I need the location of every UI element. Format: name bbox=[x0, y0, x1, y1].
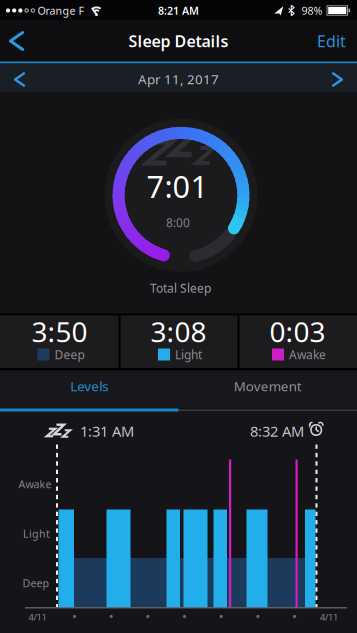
staticText: Awake bbox=[18, 477, 51, 491]
button[interactable] bbox=[322, 65, 352, 94]
button[interactable]: Edit bbox=[306, 20, 356, 62]
staticText: Levels bbox=[70, 377, 108, 395]
staticText: 0:03 bbox=[269, 313, 325, 350]
staticText: Awake bbox=[289, 346, 326, 362]
staticText: Deep bbox=[54, 346, 84, 362]
button[interactable]: Levels bbox=[0, 367, 178, 405]
staticText: 98% bbox=[301, 3, 322, 18]
button[interactable] bbox=[0, 20, 33, 62]
staticText: 1:31 AM bbox=[80, 421, 134, 441]
staticText: Sleep Details bbox=[128, 30, 228, 52]
staticText: Light bbox=[175, 346, 202, 362]
button[interactable]: Movement bbox=[178, 367, 357, 405]
staticText: Movement bbox=[234, 377, 302, 395]
staticText: 3:08 bbox=[150, 313, 206, 350]
staticText: Light bbox=[23, 526, 50, 541]
button[interactable] bbox=[4, 65, 34, 94]
staticText: Apr 11, 2017 bbox=[138, 70, 219, 88]
staticText: 4/11 bbox=[320, 611, 338, 623]
staticText: 3:50 bbox=[31, 313, 87, 350]
staticText: Edit bbox=[317, 30, 346, 52]
staticText: 4/11 bbox=[28, 611, 46, 623]
staticText: Orange F bbox=[37, 3, 84, 18]
staticText: Total Sleep bbox=[150, 280, 211, 296]
staticText: Deep bbox=[22, 576, 49, 590]
staticText: 8:00 bbox=[166, 214, 190, 230]
staticText: 8:21 AM bbox=[158, 3, 199, 18]
staticText: 8:32 AM bbox=[250, 421, 304, 441]
staticText: 7:01 bbox=[146, 166, 208, 206]
